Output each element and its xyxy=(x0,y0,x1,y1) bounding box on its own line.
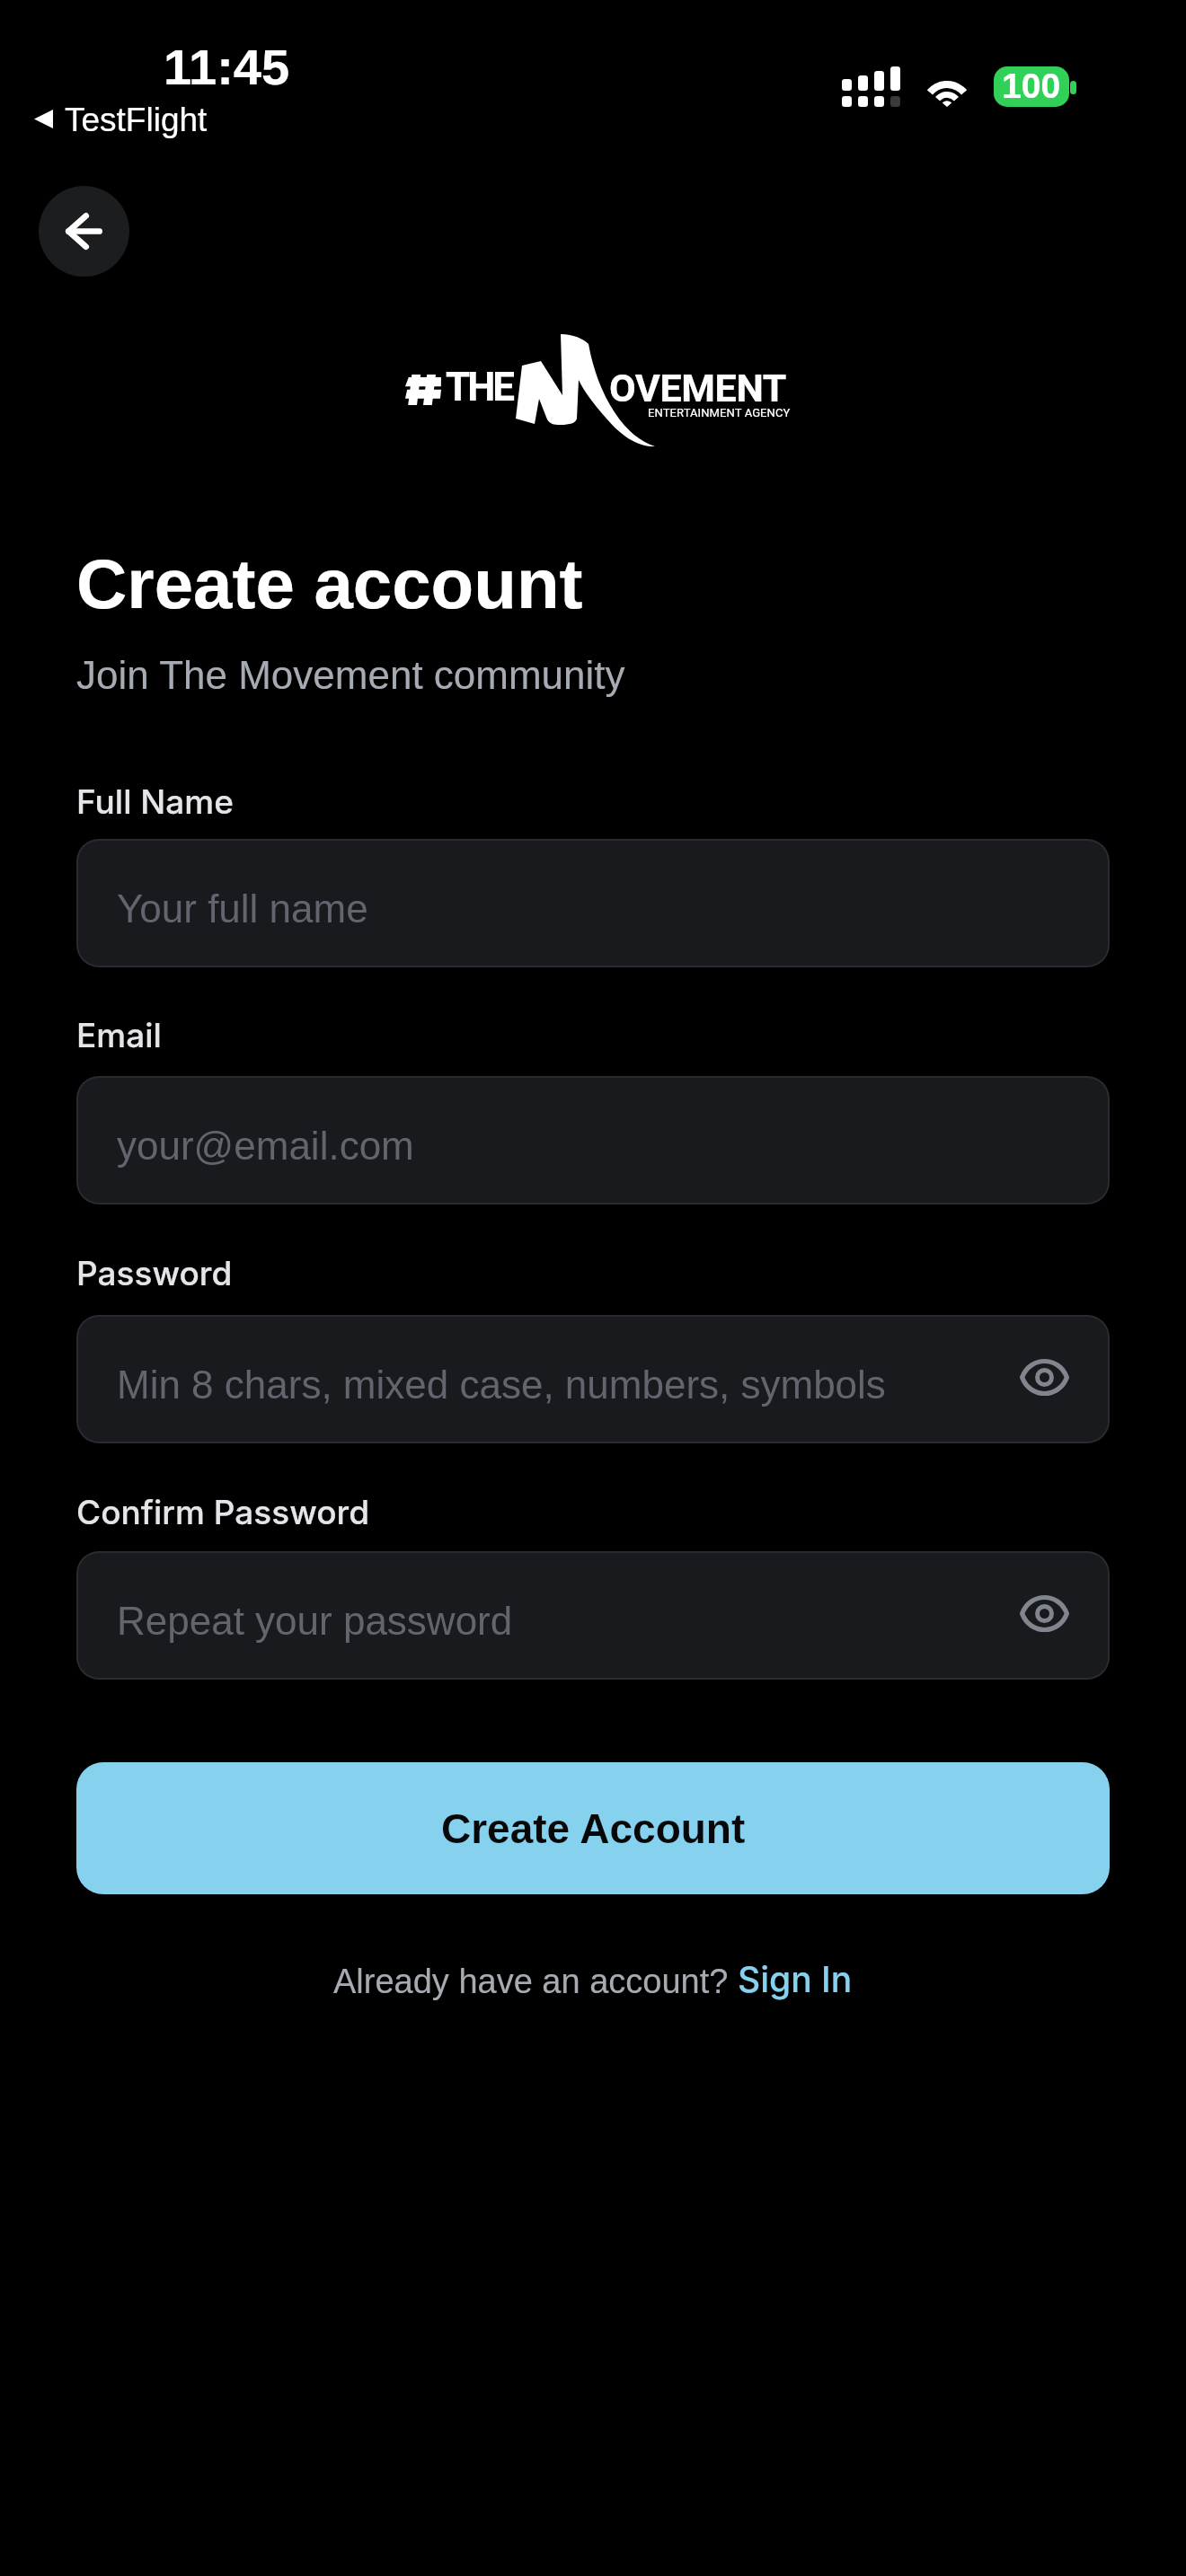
button[interactable]: Show password xyxy=(1018,1351,1070,1403)
staticText: THE xyxy=(446,364,513,410)
staticText: Create Account xyxy=(441,1805,746,1851)
staticText: Full Name xyxy=(76,781,234,822)
button[interactable]: Your full name xyxy=(76,839,1110,967)
staticText: Password xyxy=(76,1253,233,1293)
staticText: Create account xyxy=(76,544,583,622)
button[interactable]: Min 8 chars, mixed case, numbers, symbol… xyxy=(76,1315,1110,1443)
button[interactable]: your@email.com xyxy=(76,1076,1110,1204)
staticText: 100 xyxy=(1002,66,1061,106)
staticText: ENTERTAINMENT AGENCY xyxy=(648,406,791,419)
staticText: TestFlight xyxy=(65,101,208,138)
button[interactable]: Sign In xyxy=(738,1958,853,2000)
staticText: 11:45 xyxy=(164,39,290,95)
staticText: Join The Movement community xyxy=(76,653,625,697)
staticText: Already have an account? xyxy=(333,1963,738,2000)
staticText: Repeat your password xyxy=(117,1599,513,1643)
staticText: OVEMENT xyxy=(609,366,786,410)
button[interactable]: Back xyxy=(39,186,129,277)
button[interactable]: Repeat your password xyxy=(76,1551,1110,1680)
staticText: Sign In xyxy=(738,1958,853,2000)
staticText: Your full name xyxy=(117,887,368,931)
staticText: Min 8 chars, mixed case, numbers, symbol… xyxy=(117,1363,886,1407)
button[interactable]: Create Account xyxy=(76,1762,1110,1894)
staticText: Confirm Password xyxy=(76,1492,370,1532)
button[interactable]: Show password xyxy=(1018,1587,1070,1639)
staticText: Email xyxy=(76,1015,162,1055)
staticText: your@email.com xyxy=(117,1124,414,1168)
